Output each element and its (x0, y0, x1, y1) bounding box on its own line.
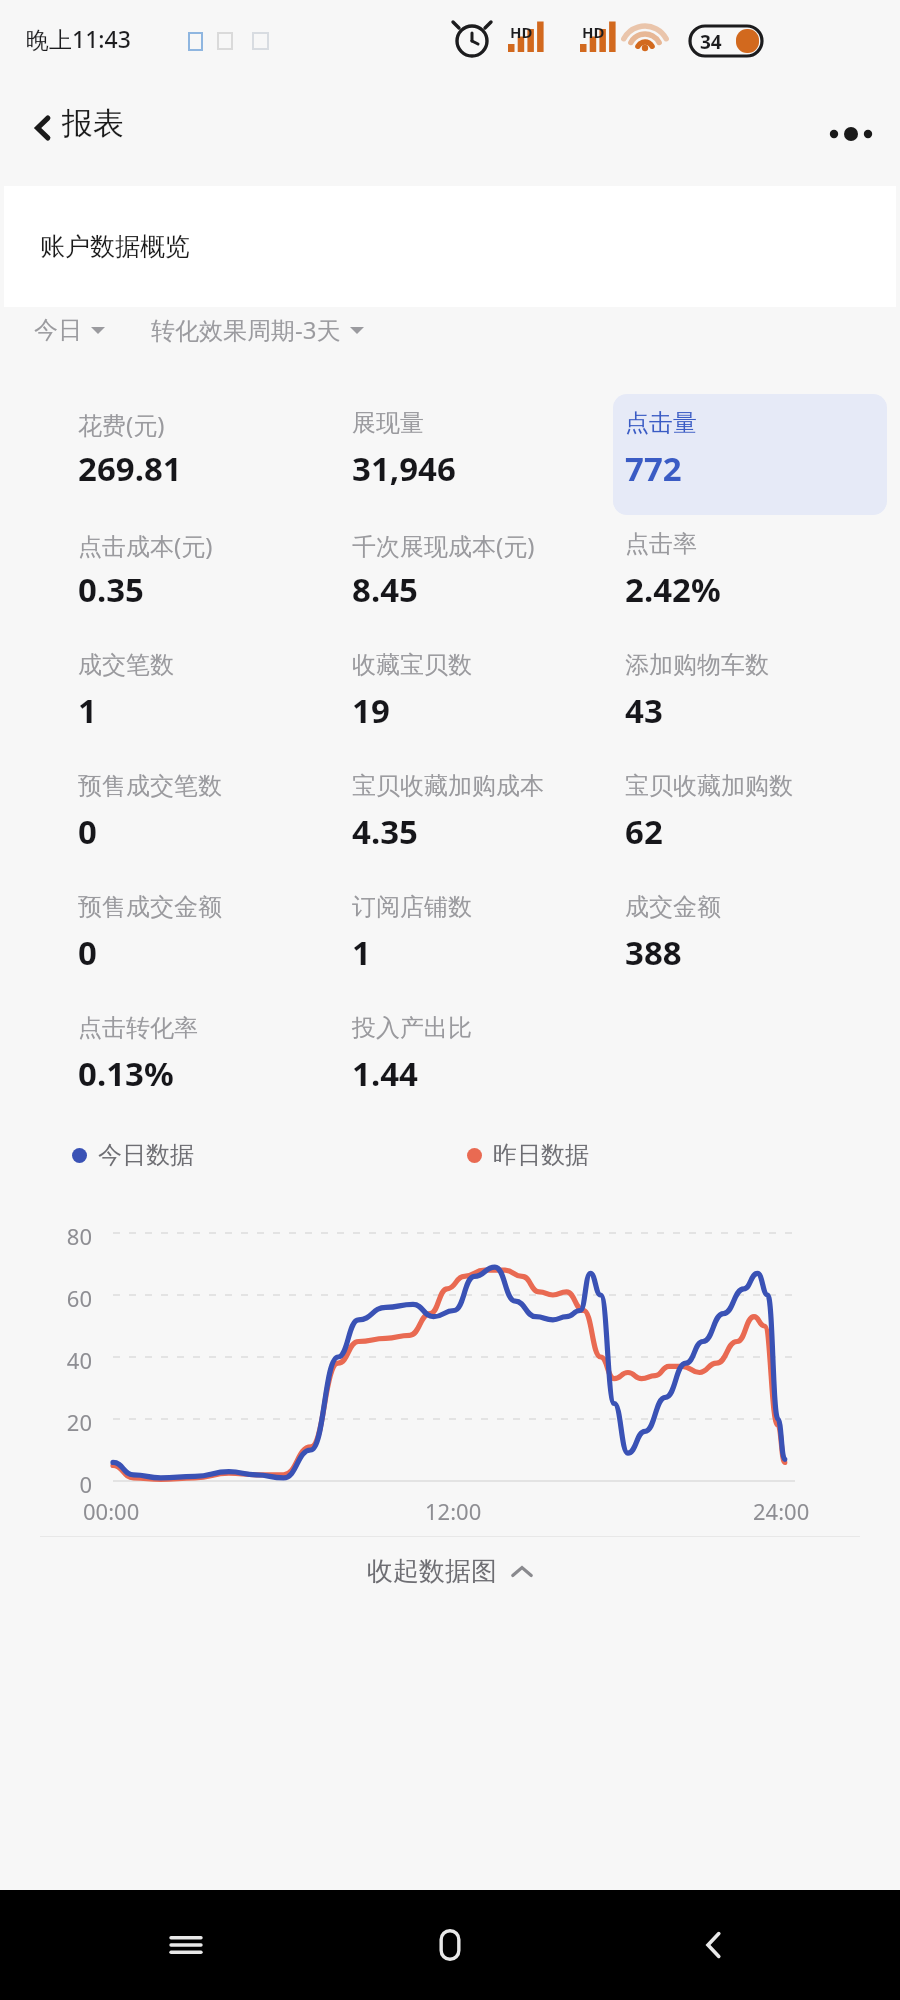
staticText: 点击成本(元) (78, 529, 213, 562)
staticText: 2.42% (625, 567, 721, 612)
staticText: 1.44 (352, 1051, 418, 1096)
button[interactable]: 成交笔数 (78, 626, 328, 747)
staticText: 772 (625, 446, 682, 491)
staticText: 点击量 (625, 408, 697, 438)
staticText: 20 (34, 1407, 92, 1437)
staticText: 0.13% (78, 1051, 174, 1096)
staticText: 点击率 (625, 529, 697, 559)
staticText: 388 (625, 930, 682, 975)
staticText: 报表 (62, 104, 124, 143)
staticText: 00:00 (83, 1496, 140, 1526)
button[interactable]: 今日 (34, 309, 105, 351)
staticText: 40 (34, 1345, 92, 1375)
staticText: 投入产出比 (352, 1013, 472, 1043)
button[interactable]: 点击量 (625, 384, 875, 505)
staticText: 晚上11:43 (26, 23, 131, 54)
staticText: 0 (78, 930, 97, 975)
staticText: 千次展现成本(元) (352, 529, 535, 562)
button[interactable]: 点击成本(元) (78, 505, 328, 626)
staticText: 花费(元) (78, 408, 165, 441)
staticText: 展现量 (352, 408, 424, 438)
button[interactable]: 宝贝收藏加购数 (625, 747, 875, 868)
staticText: 今日数据 (98, 1140, 194, 1170)
staticText: 43 (625, 688, 663, 733)
staticText: 预售成交笔数 (78, 771, 222, 801)
staticText: 0 (34, 1469, 92, 1499)
button[interactable]: 点击率 (625, 505, 875, 626)
staticText: 成交金额 (625, 892, 721, 922)
button[interactable]: Back (678, 1909, 750, 1981)
staticText: 订阅店铺数 (352, 892, 472, 922)
staticText: HD (510, 22, 533, 42)
button[interactable]: Recent apps (150, 1909, 222, 1981)
button[interactable]: 转化效果周期-3天 (151, 307, 364, 352)
button[interactable]: 昨日数据 (463, 1136, 593, 1174)
button[interactable]: 宝贝收藏加购成本 (352, 747, 602, 868)
staticText: 269.81 (78, 446, 182, 491)
button[interactable]: More options (818, 101, 884, 167)
button[interactable]: 展现量 (352, 384, 602, 505)
staticText: 宝贝收藏加购数 (625, 771, 793, 801)
staticText: 宝贝收藏加购成本 (352, 771, 544, 801)
staticText: 24:00 (753, 1496, 810, 1526)
button[interactable]: 收藏宝贝数 (352, 626, 602, 747)
staticText: 收起数据图 (367, 1555, 497, 1588)
staticText: HD (582, 22, 605, 42)
staticText: 成交笔数 (78, 650, 174, 680)
button[interactable]: 投入产出比 (352, 989, 602, 1110)
button[interactable]: 添加购物车数 (625, 626, 875, 747)
button[interactable]: 收起数据图 (349, 1547, 551, 1596)
staticText: 转化效果周期-3天 (151, 313, 341, 346)
staticText: 预售成交金额 (78, 892, 222, 922)
staticText: 昨日数据 (493, 1140, 589, 1170)
staticText: 1 (78, 688, 97, 733)
staticText: 4.35 (352, 809, 418, 854)
staticText: 80 (34, 1221, 92, 1251)
button[interactable]: 订阅店铺数 (352, 868, 602, 989)
staticText: 34 (700, 29, 722, 55)
staticText: 12:00 (425, 1496, 482, 1526)
staticText: 0.35 (78, 567, 144, 612)
button[interactable]: Home (414, 1909, 486, 1981)
staticText: 点击转化率 (78, 1013, 198, 1043)
staticText: 8.45 (352, 567, 418, 612)
staticText: 19 (352, 688, 390, 733)
staticText: 31,946 (352, 446, 456, 491)
staticText: 添加购物车数 (625, 650, 769, 680)
button[interactable]: 账户数据概览 (4, 186, 896, 307)
staticText: 60 (34, 1283, 92, 1313)
staticText: 1 (352, 930, 371, 975)
staticText: 今日 (34, 315, 82, 345)
button[interactable]: 预售成交笔数 (78, 747, 328, 868)
staticText: 0 (78, 809, 97, 854)
button[interactable]: 成交金额 (625, 868, 875, 989)
button[interactable]: 预售成交金额 (78, 868, 328, 989)
button[interactable]: 千次展现成本(元) (352, 505, 602, 626)
button[interactable]: 点击转化率 (78, 989, 328, 1110)
button[interactable]: 今日数据 (68, 1136, 198, 1174)
staticText: 收藏宝贝数 (352, 650, 472, 680)
staticText: 62 (625, 809, 663, 854)
button[interactable]: Back (14, 99, 72, 157)
button[interactable]: 花费(元) (78, 384, 328, 505)
staticText: 账户数据概览 (40, 231, 190, 262)
